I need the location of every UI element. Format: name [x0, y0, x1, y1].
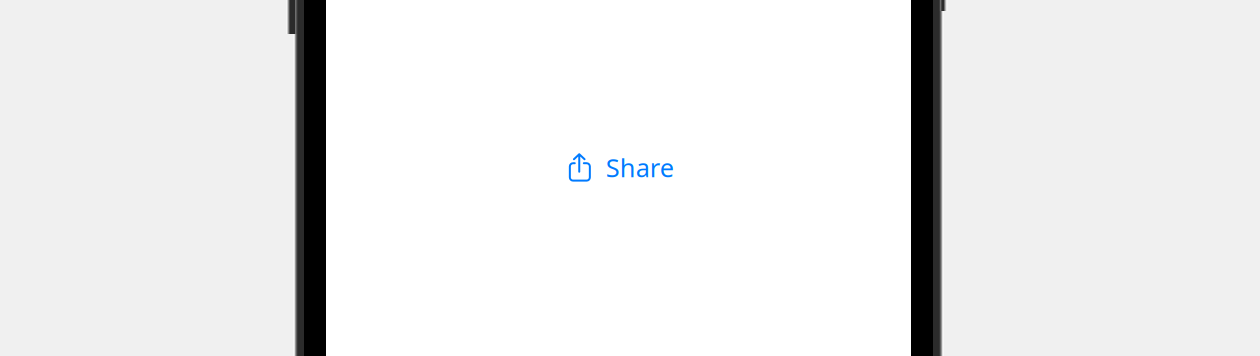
button[interactable]: Share — [556, 145, 681, 190]
staticText: Share — [606, 151, 674, 184]
